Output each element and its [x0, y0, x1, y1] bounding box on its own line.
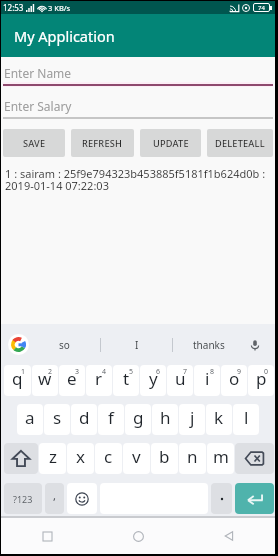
staticText: b [159, 445, 170, 468]
staticText: Enter Salary [4, 98, 72, 114]
staticText: q [12, 367, 23, 390]
staticText: so [59, 338, 70, 352]
button[interactable]: I [101, 324, 172, 365]
staticText: m [213, 445, 229, 468]
staticText: 12:53 [3, 2, 24, 13]
staticText: I [135, 338, 139, 352]
button[interactable]: Recents [30, 519, 64, 553]
staticText: Enter Name [4, 65, 72, 81]
staticText: REFRESH [82, 137, 123, 150]
staticText: p [256, 367, 267, 390]
button[interactable]: Emoji [67, 483, 97, 514]
staticText: w [38, 367, 52, 390]
staticText: 3 [75, 367, 80, 377]
staticText: k [214, 406, 224, 429]
button[interactable]: u [167, 365, 193, 396]
staticText: j [190, 406, 195, 429]
staticText: t [123, 367, 130, 390]
staticText: u [175, 367, 186, 390]
button[interactable]: y [140, 365, 166, 396]
button[interactable]: Voice input [247, 337, 263, 353]
staticText: a [25, 406, 35, 429]
button[interactable]: c [95, 443, 122, 474]
staticText: 1 [21, 367, 26, 377]
button[interactable]: p [248, 365, 274, 396]
button[interactable]: d [71, 404, 97, 435]
staticText: n [187, 445, 198, 468]
staticText: 74 [258, 4, 265, 12]
staticText: v [132, 445, 141, 468]
staticText: f [108, 406, 114, 429]
button[interactable]: n [179, 443, 206, 474]
staticText: 0 [264, 367, 269, 377]
button[interactable]: so [29, 324, 100, 365]
button[interactable]: ?123 [4, 483, 42, 514]
button[interactable]: f [98, 404, 124, 435]
button[interactable]: h [152, 404, 178, 435]
button[interactable] [211, 483, 232, 514]
button[interactable]: k [206, 404, 232, 435]
button[interactable]: Back [212, 519, 246, 553]
staticText: 4 [102, 367, 107, 377]
button[interactable]: Shift [4, 443, 38, 474]
button[interactable]: thanks [173, 324, 244, 365]
button[interactable]: g [125, 404, 151, 435]
button[interactable]: x [67, 443, 94, 474]
button[interactable]: q [4, 365, 31, 396]
button[interactable]: Google [8, 334, 29, 355]
staticText: 7 [183, 367, 188, 377]
staticText: s [53, 406, 62, 429]
staticText: g [133, 406, 144, 429]
staticText: o [229, 367, 240, 390]
button[interactable]: t [113, 365, 139, 396]
button[interactable]: Home [121, 519, 155, 553]
staticText: x [76, 445, 85, 468]
staticText: DELETEALL [215, 137, 265, 150]
button[interactable]: v [123, 443, 150, 474]
button[interactable]: , [45, 483, 64, 514]
button[interactable]: a [17, 404, 43, 435]
button[interactable]: l [233, 404, 259, 435]
button[interactable]: DELETEALL [207, 129, 273, 157]
staticText: thanks [193, 338, 225, 352]
staticText: ?123 [13, 493, 33, 505]
staticText: l [244, 406, 249, 429]
staticText: UPDATE [153, 137, 189, 150]
button[interactable]: SAVE [3, 129, 65, 157]
button[interactable]: o [221, 365, 247, 396]
button[interactable]: s [44, 404, 70, 435]
staticText: c [104, 445, 113, 468]
staticText: 8 [210, 367, 215, 377]
button[interactable]: Enter Salary [1, 98, 275, 120]
staticText: 9 [237, 367, 242, 377]
staticText: SAVE [23, 137, 46, 150]
staticText: My Application [14, 26, 115, 46]
button[interactable]: Enter [235, 483, 274, 514]
staticText: i [205, 367, 210, 390]
button[interactable]: e [59, 365, 85, 396]
staticText: r [95, 367, 103, 390]
staticText: 3 KB/s [48, 3, 71, 13]
button[interactable]: b [151, 443, 178, 474]
button[interactable]: i [194, 365, 220, 396]
staticText: z [49, 445, 57, 468]
button[interactable]: j [179, 404, 205, 435]
button[interactable]: z [39, 443, 66, 474]
staticText: 6 [156, 367, 161, 377]
staticText: 1 : sairam : 25f9e794323b453885f5181f1b6… [5, 166, 266, 193]
staticText: d [79, 406, 90, 429]
button[interactable]: Backspace [235, 443, 274, 474]
button[interactable]: UPDATE [140, 129, 201, 157]
button[interactable]: REFRESH [71, 129, 134, 157]
staticText: e [67, 367, 77, 390]
staticText: h [160, 406, 171, 429]
button[interactable]: Enter Name [1, 65, 275, 87]
staticText: , [53, 488, 56, 503]
button[interactable]: w [32, 365, 58, 396]
staticText: 2 [48, 367, 53, 377]
staticText: 5 [129, 367, 134, 377]
button[interactable]: r [86, 365, 112, 396]
staticText: y [149, 367, 158, 390]
button[interactable]: m [207, 443, 234, 474]
